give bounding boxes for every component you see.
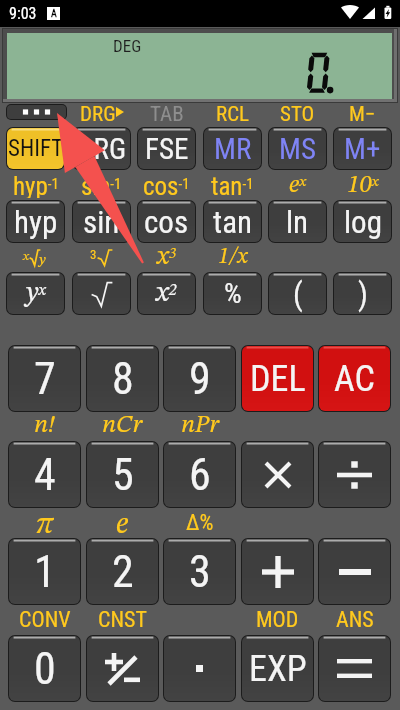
button[interactable]: ÷ [318, 441, 391, 508]
button[interactable]: square root [72, 272, 131, 315]
button[interactable]: FSE [137, 127, 196, 170]
button[interactable]: DRG [72, 102, 131, 122]
button[interactable]: open parenthesis [268, 272, 327, 315]
button[interactable]: 0 [8, 635, 81, 702]
staticText: x3 [157, 244, 177, 270]
staticText: % [224, 277, 242, 310]
button[interactable]: − [318, 538, 391, 605]
staticText: 4 [34, 449, 56, 501]
staticText: tan [213, 204, 253, 240]
button[interactable]: STO [268, 102, 327, 122]
staticText: DEL [250, 358, 306, 400]
button[interactable]: MS [268, 127, 327, 170]
staticText: nCr [102, 413, 143, 438]
button[interactable]: tan [203, 200, 262, 243]
staticText: 6 [189, 449, 211, 501]
staticText: 3 [90, 247, 97, 262]
staticText: Δ% [186, 510, 214, 535]
staticText: SHIFT [8, 135, 64, 162]
button[interactable]: 1 [8, 538, 81, 605]
staticText: RCL [216, 102, 250, 122]
staticText: 1/x [218, 246, 248, 268]
button[interactable]: DEL [241, 345, 314, 412]
staticText: M+ [344, 132, 381, 166]
staticText: y [39, 253, 46, 268]
staticText: A [51, 8, 57, 20]
staticText: MR [214, 132, 252, 166]
staticText: DRG [80, 102, 116, 122]
button[interactable]: 4 [8, 441, 81, 508]
staticText: CNST [98, 607, 147, 632]
button[interactable]: x squared [137, 272, 196, 315]
staticText: tan-1 [211, 172, 254, 198]
staticText: 1 [34, 546, 56, 598]
button[interactable]: M− [333, 102, 392, 122]
button[interactable]: ln [268, 200, 327, 243]
staticText: TAB [150, 102, 184, 122]
staticText: MS [279, 132, 316, 166]
staticText: cos [144, 204, 189, 240]
staticText: ln [286, 204, 309, 240]
button[interactable]: percent [203, 272, 262, 315]
staticText: ( [293, 276, 303, 312]
staticText: π [36, 510, 54, 535]
staticText: EXP [249, 648, 307, 690]
button[interactable]: TAB [137, 102, 196, 122]
button[interactable]: 6 [163, 441, 236, 508]
button[interactable]: EXP [241, 635, 314, 702]
staticText: sin [83, 204, 120, 240]
staticText: nPr [181, 413, 219, 438]
button[interactable]: ± [86, 635, 159, 702]
staticText: cos-1 [143, 172, 190, 198]
button[interactable]: 8 [86, 345, 159, 412]
staticText: DRG [77, 132, 127, 166]
button[interactable]: 9 [163, 345, 236, 412]
button[interactable]: RCL [203, 102, 262, 122]
button[interactable]: sin [72, 200, 131, 243]
staticText: 10x [347, 173, 379, 198]
staticText: n! [34, 413, 55, 438]
staticText: 3 [189, 546, 211, 598]
staticText: ) [358, 276, 368, 312]
button[interactable]: 7 [8, 345, 81, 412]
button[interactable]: close parenthesis [333, 272, 392, 315]
staticText: hyp [14, 204, 58, 240]
button[interactable]: More options [6, 104, 67, 120]
button[interactable]: y to the power x [6, 272, 65, 315]
button[interactable]: log [333, 200, 392, 243]
staticText: ANS [336, 607, 374, 632]
button[interactable]: 5 [86, 441, 159, 508]
staticText: FSE [145, 132, 189, 166]
staticText: log [344, 204, 382, 240]
staticText: 8 [112, 353, 134, 405]
staticText: 5 [112, 449, 134, 501]
button[interactable]: hyp [6, 200, 65, 243]
button[interactable]: = [318, 635, 391, 702]
staticText: 2 [112, 546, 134, 598]
button[interactable]: M+ [333, 127, 392, 170]
staticText: CONV [19, 607, 71, 632]
button[interactable]: MR [203, 127, 262, 170]
staticText: 0 [34, 643, 56, 695]
button[interactable]: × [241, 441, 314, 508]
button[interactable]: cos [137, 200, 196, 243]
staticText: e [116, 510, 129, 535]
staticText: AC [334, 358, 375, 400]
button[interactable]: 2 [86, 538, 159, 605]
staticText: sin-1 [81, 172, 122, 198]
staticText: x [23, 250, 29, 263]
button[interactable]: · [163, 635, 236, 702]
staticText: hyp-1 [13, 172, 59, 198]
staticText: DEG [113, 36, 142, 56]
staticText: MOD [256, 607, 299, 632]
staticText: yx [26, 280, 46, 308]
staticText: M− [349, 102, 376, 122]
staticText: 9 [189, 353, 211, 405]
staticText: STO [280, 102, 315, 122]
button[interactable]: + [241, 538, 314, 605]
button[interactable]: 3 [163, 538, 236, 605]
button[interactable]: SHIFT [6, 127, 65, 170]
staticText: 9:03 [9, 4, 37, 23]
button[interactable]: AC [318, 345, 391, 412]
button[interactable]: DRG [72, 127, 131, 170]
